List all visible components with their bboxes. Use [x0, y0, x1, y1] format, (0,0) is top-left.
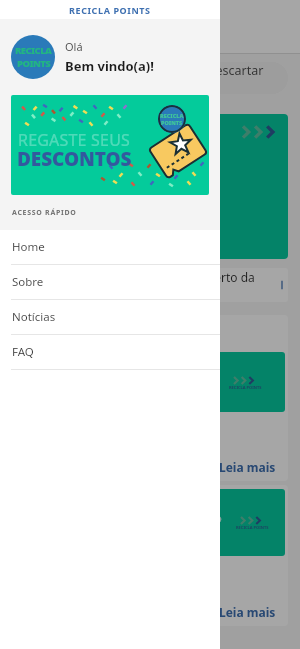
staticText: Olá — [65, 39, 83, 54]
button[interactable]: Leia mais — [219, 459, 276, 475]
staticText: Digite um material que deseja descartar … — [28, 62, 272, 94]
staticText: Leia mais — [219, 604, 276, 620]
staticText: Leia mais — [219, 459, 276, 475]
staticText: RECICLA POINTS — [236, 525, 269, 530]
button[interactable]: REGASTE SEUS — [11, 95, 209, 195]
staticText: ACESSO RÁPIDO — [12, 208, 77, 218]
button[interactable]: Encontre o ponto de coleta mais perto da… — [12, 268, 288, 302]
staticText: RECICLA — [15, 44, 52, 57]
button[interactable]: Digite um material que deseja descartar … — [12, 62, 288, 94]
staticText: Bem vindo(a)! — [65, 57, 154, 75]
button[interactable]: Sobre — [0, 265, 220, 300]
staticText: Como separar o lixo em casa? — [39, 364, 215, 401]
staticText: Encontre o ponto de coleta mais perto da… — [22, 269, 282, 301]
staticText: POINTS — [17, 57, 51, 70]
button[interactable]: Notícias — [0, 300, 220, 335]
button[interactable]: Leia mais — [219, 604, 276, 620]
staticText: POINTS — [161, 119, 183, 126]
staticText: Notícias — [12, 309, 56, 325]
button[interactable]: Como separar o lixo em casa? — [12, 315, 288, 481]
staticText: Reciclar: você pode? — [31, 510, 222, 536]
staticText: FAQ — [12, 344, 34, 360]
staticText: DESCONTOS — [17, 146, 132, 172]
staticText: RECICLA POINTS — [69, 4, 151, 16]
button[interactable]: FAQ — [0, 335, 220, 370]
button[interactable]: Reciclar: você pode? — [12, 485, 288, 626]
staticText: RECICLA POINTS — [229, 385, 262, 390]
staticText: RECICLA — [160, 112, 184, 119]
staticText: Sobre — [12, 274, 44, 290]
staticText: REGASTE SEUS — [18, 129, 131, 151]
staticText: Home — [12, 239, 45, 255]
button[interactable]: Home — [0, 230, 220, 265]
button[interactable] — [12, 114, 288, 259]
